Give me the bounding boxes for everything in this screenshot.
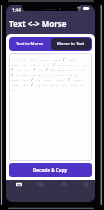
staticText: Text to Morse <box>16 41 44 47</box>
staticText: Decode & Copy <box>33 167 68 173</box>
button[interactable]: Keyboard <box>12 180 26 194</box>
button[interactable]: Decode & Copy <box>9 163 92 177</box>
button[interactable]: .... . .-.. .-.. --- / .-- --- .-. .-.. … <box>11 57 90 161</box>
staticText: Morse to Text <box>57 41 85 47</box>
staticText: 1:44 <box>12 7 21 13</box>
button[interactable]: Settings <box>79 180 93 194</box>
button[interactable]: Text to Morse <box>9 37 50 51</box>
button[interactable]: Audio <box>34 180 48 194</box>
staticText: .... . .-.. .-.. --- / .-- --- .-. .-.. … <box>11 57 90 92</box>
button[interactable]: Reference <box>57 180 71 194</box>
staticText: Text <-> Morse <box>9 18 67 29</box>
button[interactable]: Morse to Text <box>51 38 91 50</box>
